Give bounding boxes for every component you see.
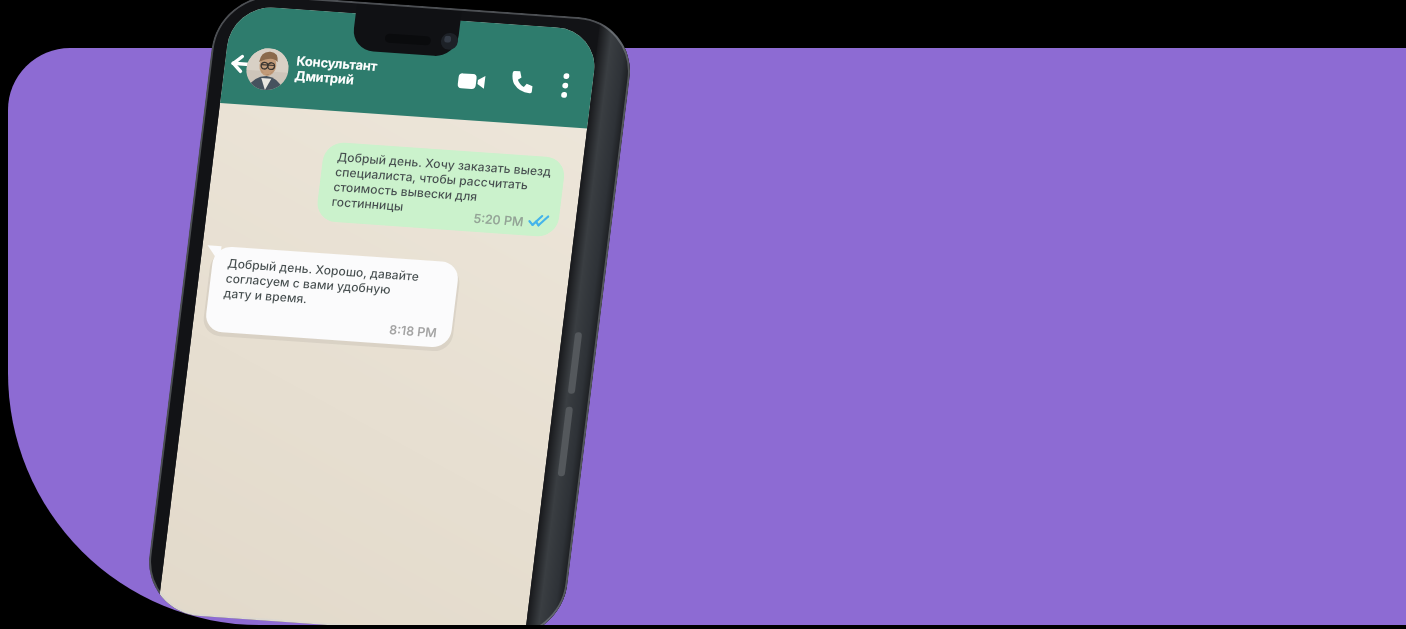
staticText: дату и время. bbox=[216, 247, 315, 345]
staticText: согласуем с вами удобную bbox=[218, 194, 399, 374]
button[interactable] bbox=[222, 44, 263, 84]
button[interactable] bbox=[500, 60, 544, 104]
staticText: специалиста, чтобы рассчитать bbox=[328, 75, 536, 282]
staticText: стоимость вывески для bbox=[326, 113, 485, 270]
button[interactable]: Добрый день. Хочу заказать выезд bbox=[280, 30, 601, 349]
button[interactable]: Добрый день. Хорошо, давайте bbox=[166, 132, 498, 462]
staticText: Консультант bbox=[289, 16, 385, 111]
button[interactable] bbox=[225, 27, 309, 111]
staticText: гостинницы bbox=[324, 161, 411, 247]
button[interactable] bbox=[544, 67, 586, 109]
staticText: Добрый день. Хорошо, давайте bbox=[220, 167, 426, 373]
staticText: 5:20 PM bbox=[466, 187, 532, 253]
staticText: Добрый день. Хочу заказать выезд bbox=[330, 50, 559, 278]
staticText: 8:18 PM bbox=[382, 300, 445, 362]
button[interactable] bbox=[448, 58, 495, 105]
staticText: Дмитрий bbox=[287, 40, 362, 115]
